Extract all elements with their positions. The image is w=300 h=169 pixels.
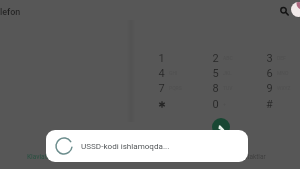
button[interactable]: 5: [203, 65, 239, 82]
staticText: 7: [158, 82, 165, 95]
button[interactable]: #: [257, 96, 293, 113]
button[interactable]: 9: [257, 80, 293, 97]
staticText: 3: [266, 52, 273, 65]
button[interactable]: 3: [257, 50, 293, 67]
staticText: 6: [266, 67, 273, 80]
staticText: 5: [212, 67, 219, 80]
staticText: 2: [212, 52, 219, 65]
button[interactable]: 6: [257, 65, 293, 82]
button[interactable]: Account: [291, 2, 300, 17]
staticText: 0: [212, 98, 219, 111]
staticText: Kontaktlar: [236, 153, 266, 161]
button[interactable]: 8: [203, 80, 239, 97]
staticText: 9: [266, 82, 273, 95]
staticText: #: [266, 98, 273, 111]
staticText: 8: [212, 82, 219, 95]
staticText: Telefon: [0, 7, 21, 18]
staticText: USSD-kodi ishlamoqda...: [81, 141, 170, 150]
staticText: Klaviatura: [27, 153, 57, 161]
button[interactable]: [149, 96, 185, 113]
button[interactable]: Search: [276, 3, 291, 18]
button[interactable]: 2: [203, 50, 239, 67]
button[interactable]: 0: [203, 96, 239, 113]
button[interactable]: Klaviatura: [2, 148, 82, 166]
button[interactable]: Kontaktlar: [211, 148, 291, 166]
staticText: 1: [158, 52, 165, 65]
staticText: 4: [158, 67, 165, 80]
button[interactable]: Call: [212, 118, 230, 136]
button[interactable]: 4: [149, 65, 185, 82]
button[interactable]: 1: [149, 50, 185, 67]
button[interactable]: 7: [149, 80, 185, 97]
